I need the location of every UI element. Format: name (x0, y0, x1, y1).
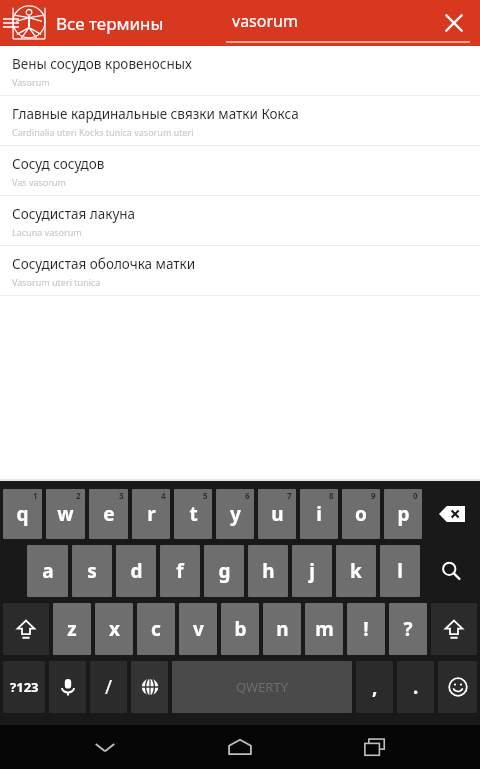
button[interactable]: Shift (431, 603, 477, 655)
staticText: o (355, 501, 367, 527)
staticText: n (276, 616, 289, 642)
staticText: d (130, 558, 143, 584)
staticText: Сосуд сосудов (12, 155, 105, 173)
button[interactable]: Сосуд сосудов (0, 146, 480, 196)
button[interactable]: b (221, 603, 259, 655)
staticText: Cardinalia uteri Kocks tunica vasorum ut… (12, 126, 194, 138)
button[interactable]: Recent apps (345, 725, 405, 769)
button[interactable]: Home (210, 725, 270, 769)
button[interactable]: n (263, 603, 301, 655)
button[interactable]: j (292, 545, 332, 597)
button[interactable]: Open navigation menu (0, 0, 22, 46)
button[interactable]: Change language (131, 661, 168, 713)
button[interactable]: d (116, 545, 156, 597)
button[interactable]: Search (424, 545, 477, 597)
staticText: q (16, 501, 29, 527)
button[interactable]: , (356, 661, 393, 713)
staticText: ! (363, 616, 369, 642)
button[interactable]: Shift (3, 603, 49, 655)
staticText: h (262, 558, 275, 584)
staticText: s (87, 558, 97, 584)
button[interactable]: Emoji (438, 661, 477, 713)
staticText: Все термины (56, 12, 164, 35)
staticText: t (189, 501, 198, 527)
button[interactable]: QWERTY (172, 661, 352, 713)
button[interactable]: Voice input (49, 661, 86, 713)
button[interactable]: t (174, 489, 212, 539)
button[interactable]: ?123 (3, 661, 45, 713)
button[interactable]: m (305, 603, 343, 655)
button[interactable]: Clear search (434, 3, 474, 43)
staticText: p (397, 501, 410, 527)
staticText: 1 (33, 490, 38, 501)
button[interactable]: a (27, 545, 68, 597)
button[interactable]: p (384, 489, 422, 539)
button[interactable]: Backspace (426, 489, 477, 539)
button[interactable]: y (216, 489, 254, 539)
staticText: Lacuna vasorum (12, 226, 82, 238)
staticText: Vas vasorum (12, 176, 66, 188)
staticText: 3 (119, 490, 124, 501)
staticText: ? (403, 616, 413, 642)
button[interactable]: i (300, 489, 338, 539)
button[interactable]: . (397, 661, 434, 713)
button[interactable]: w (46, 489, 85, 539)
staticText: l (397, 558, 403, 584)
staticText: Сосудистая лакуна (12, 205, 136, 223)
staticText: 9 (371, 490, 376, 501)
staticText: c (151, 616, 161, 642)
staticText: / (105, 674, 113, 700)
button[interactable]: x (95, 603, 133, 655)
staticText: z (67, 616, 77, 642)
button[interactable]: v (179, 603, 217, 655)
button[interactable]: r (132, 489, 170, 539)
button[interactable]: g (204, 545, 244, 597)
staticText: m (315, 616, 334, 642)
staticText: y (230, 501, 241, 527)
button[interactable]: Hide keyboard (75, 725, 135, 769)
button[interactable]: Все термины (10, 0, 164, 46)
staticText: QWERTY (236, 678, 289, 696)
staticText: . (413, 674, 419, 700)
staticText: u (271, 501, 284, 527)
button[interactable]: Сосудистая лакуна (0, 196, 480, 246)
button[interactable]: ! (347, 603, 385, 655)
staticText: 8 (329, 490, 334, 501)
button[interactable]: q (3, 489, 42, 539)
staticText: Vasorum (12, 76, 50, 88)
button[interactable]: f (160, 545, 200, 597)
button[interactable]: Сосудистая оболочка матки (0, 246, 480, 296)
button[interactable]: s (72, 545, 112, 597)
staticText: 7 (287, 490, 292, 501)
button[interactable]: e (89, 489, 128, 539)
button[interactable]: Главные кардинальные связки матки Кокса (0, 96, 480, 146)
button[interactable]: l (380, 545, 420, 597)
button[interactable]: u (258, 489, 296, 539)
button[interactable]: h (248, 545, 288, 597)
staticText: Вены сосудов кровеносных (12, 55, 192, 73)
staticText: Vasorum uteri tunica (12, 276, 101, 288)
staticText: 6 (245, 490, 250, 501)
staticText: 5 (203, 490, 208, 501)
button[interactable]: k (336, 545, 376, 597)
button[interactable]: z (53, 603, 91, 655)
staticText: vasorum (232, 10, 298, 32)
staticText: j (309, 558, 315, 584)
button[interactable]: c (137, 603, 175, 655)
staticText: r (147, 501, 156, 527)
staticText: w (57, 501, 74, 527)
button[interactable]: / (90, 661, 127, 713)
button[interactable]: Вены сосудов кровеносных (0, 46, 480, 96)
staticText: f (176, 558, 184, 584)
staticText: x (109, 616, 120, 642)
staticText: 0 (413, 490, 418, 501)
staticText: i (316, 501, 322, 527)
staticText: 4 (161, 490, 166, 501)
staticText: v (193, 616, 204, 642)
staticText: k (350, 558, 362, 584)
button[interactable]: ? (389, 603, 427, 655)
staticText: , (372, 674, 378, 700)
staticText: Сосудистая оболочка матки (12, 255, 196, 273)
button[interactable]: o (342, 489, 380, 539)
staticText: Главные кардинальные связки матки Кокса (12, 105, 299, 123)
